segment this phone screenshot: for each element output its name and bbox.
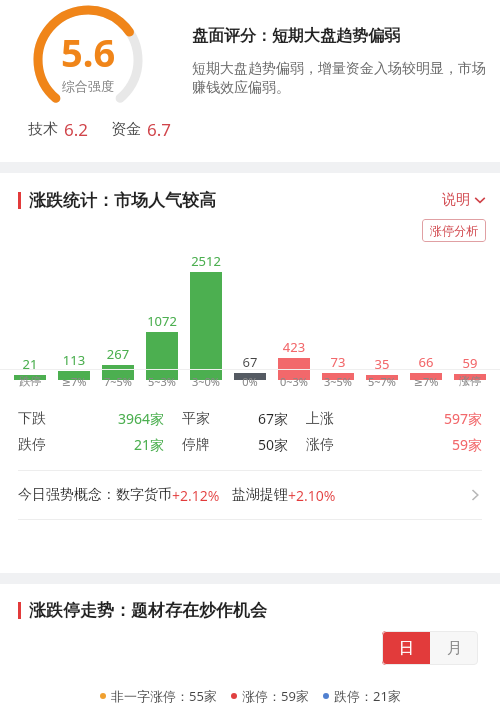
staticText: 涨停：59家 [242, 687, 309, 705]
staticText: 5.6 [61, 26, 116, 78]
staticText: 技术 [28, 120, 58, 139]
staticText: 月 [447, 639, 462, 658]
staticText: 上涨 [306, 410, 350, 428]
staticText: 涨停 [306, 436, 350, 454]
staticText: 67 [228, 353, 272, 371]
staticText: 67家 [226, 409, 288, 428]
staticText: 21 [8, 355, 52, 373]
staticText: 7~5% [96, 374, 140, 389]
staticText: 5~3% [140, 374, 184, 389]
staticText: 日 [399, 639, 414, 658]
staticText: 6.7 [147, 118, 172, 141]
staticText: 非一字涨停：55家 [111, 687, 217, 705]
staticText: 59 [448, 354, 492, 372]
staticText: +2.12% [172, 486, 220, 505]
staticText: 35 [360, 355, 404, 373]
staticText: 1072 [140, 312, 184, 330]
staticText: 597家 [350, 409, 482, 428]
staticText: 21家 [66, 435, 164, 454]
staticText: 说明 [442, 191, 470, 209]
button[interactable]: 日 [382, 631, 430, 665]
button[interactable]: 说明 [428, 187, 500, 213]
staticText: 59家 [350, 435, 482, 454]
staticText: 盐湖提锂 [232, 486, 288, 504]
staticText: +2.10% [288, 486, 336, 505]
staticText: 停牌 [182, 436, 226, 454]
staticText: 下跌 [18, 410, 66, 428]
button[interactable]: 今日强势概念： [0, 471, 500, 519]
staticText: 3964家 [66, 409, 164, 428]
staticText: 6.2 [64, 118, 89, 141]
staticText: 涨跌停走势：题材存在炒作机会 [29, 600, 267, 621]
staticText: 0~3% [272, 374, 316, 389]
staticText: 短期大盘趋势偏弱，增量资金入场较明显，市场赚钱效应偏弱。 [192, 60, 486, 96]
staticText: 盘面评分：短期大盘趋势偏弱 [192, 26, 400, 46]
staticText: 66 [404, 353, 448, 371]
button[interactable]: 涨停分析 [422, 219, 486, 242]
staticText: 3~5% [316, 374, 360, 389]
staticText: 2512 [184, 252, 228, 270]
staticText: 113 [52, 351, 96, 369]
staticText: 跌停：21家 [334, 687, 401, 705]
staticText: 综合强度 [62, 78, 114, 94]
staticText: 资金 [111, 120, 141, 139]
staticText: 涨停 [448, 374, 492, 388]
button[interactable]: 月 [430, 631, 478, 665]
staticText: 267 [96, 345, 140, 363]
staticText: 0% [228, 374, 272, 389]
staticText: 73 [316, 353, 360, 371]
staticText: 3~0% [184, 374, 228, 389]
staticText: 平家 [182, 410, 226, 428]
staticText: ≥7% [52, 374, 96, 389]
staticText: 5~7% [360, 374, 404, 389]
staticText: 今日强势概念： [18, 486, 116, 504]
staticText: 跌停 [18, 436, 66, 454]
staticText: 涨跌统计：市场人气较高 [29, 190, 216, 211]
staticText: 423 [272, 338, 316, 356]
staticText: 跌停 [8, 374, 52, 388]
staticText: ≥7% [404, 374, 448, 389]
staticText: 数字货币 [116, 486, 172, 504]
staticText: 涨停分析 [430, 223, 478, 238]
staticText: 50家 [226, 435, 288, 454]
